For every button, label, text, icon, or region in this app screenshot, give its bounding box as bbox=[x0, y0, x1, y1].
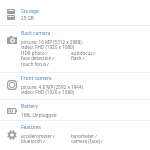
staticText: 16%, Unplugged bbox=[21, 112, 57, 118]
staticText: accelerometer✓ bbox=[21, 133, 56, 139]
staticText: 25 GB bbox=[21, 15, 34, 21]
staticText: autofocus✓ bbox=[71, 50, 97, 56]
button[interactable]: Back camera bbox=[7, 36, 17, 44]
staticText: Battery bbox=[21, 103, 38, 110]
staticText: picture: 16 MP (5312 x 2988) bbox=[21, 39, 82, 45]
button[interactable]: Front camera bbox=[7, 80, 17, 90]
staticText: camera (face)✓ bbox=[71, 138, 104, 144]
staticText: Front camera bbox=[21, 75, 52, 82]
staticText: Features bbox=[21, 124, 41, 131]
button[interactable]: Battery bbox=[7, 108, 17, 114]
staticText: video: FHD (1920 x 1080) bbox=[21, 89, 75, 95]
staticText: flash✓ bbox=[71, 55, 86, 61]
staticText: video: FHD (1920 x 1080) bbox=[21, 44, 75, 50]
staticText: Storage bbox=[21, 8, 39, 15]
staticText: barometer✓ bbox=[71, 133, 98, 139]
staticText: picture: 4.8 MP (2592 x 1944) bbox=[21, 84, 83, 90]
staticText: face detection✓ bbox=[21, 55, 56, 61]
staticText: Back camera bbox=[21, 30, 51, 37]
staticText: touch focus✓ bbox=[21, 61, 50, 67]
button[interactable]: Storage bbox=[7, 9, 15, 20]
staticText: bluetooth✓ bbox=[21, 138, 47, 144]
button[interactable]: Features bbox=[7, 130, 17, 140]
staticText: HDR photo✓ bbox=[21, 50, 49, 56]
